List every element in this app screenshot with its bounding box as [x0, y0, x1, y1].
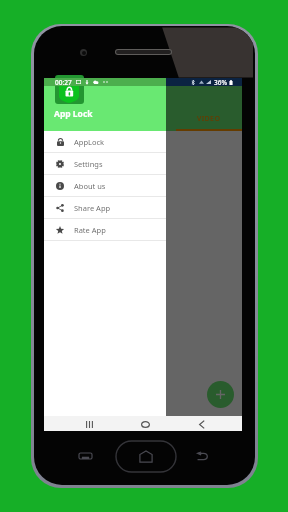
button[interactable]: VIDEO [176, 86, 242, 131]
button[interactable]: Share App [44, 197, 166, 219]
button[interactable]: Add [207, 381, 234, 408]
button[interactable]: Home [116, 441, 176, 472]
button[interactable]: Back [197, 452, 208, 460]
button[interactable]: PHOTO [44, 86, 110, 131]
staticText: 36% [214, 78, 227, 86]
staticText: AppLock [74, 137, 105, 147]
button[interactable]: Recent apps [79, 453, 92, 459]
button[interactable]: Rate App [44, 219, 166, 241]
button[interactable]: Recent apps [78, 418, 100, 431]
staticText: Rate App [74, 225, 106, 235]
button[interactable]: About us [44, 175, 166, 197]
staticText: PHOTO [64, 114, 91, 124]
staticText: Share App [74, 203, 111, 213]
button[interactable]: Back [190, 418, 212, 431]
button[interactable]: AppLock [44, 131, 166, 153]
button[interactable]: AUDIO [110, 86, 176, 131]
button[interactable]: Home [134, 418, 156, 431]
button[interactable]: Settings [44, 153, 166, 175]
staticText: Settings [74, 159, 103, 169]
staticText: 00:27 [55, 78, 72, 86]
staticText: About us [74, 181, 106, 191]
staticText: VIDEO [197, 114, 221, 124]
staticText: App Lock [54, 108, 93, 120]
